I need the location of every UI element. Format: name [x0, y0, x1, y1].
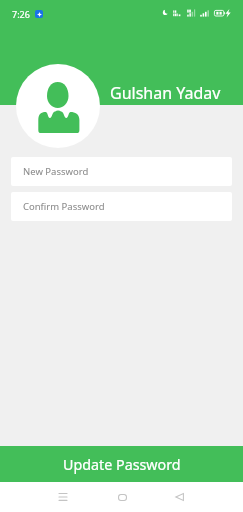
button[interactable]: Back: [164, 482, 194, 512]
button[interactable]: Recent apps: [48, 482, 78, 512]
staticText: 7:26: [12, 8, 30, 20]
staticText: New Password: [23, 165, 89, 178]
button[interactable]: Profile photo: [16, 64, 100, 148]
staticText: Update Password: [63, 455, 181, 474]
button[interactable]: Update Password: [0, 446, 243, 482]
button[interactable]: New Password: [11, 157, 232, 186]
staticText: Gulshan Yadav: [110, 82, 221, 104]
button[interactable]: Home: [107, 482, 137, 512]
button[interactable]: Confirm Password: [11, 192, 232, 221]
staticText: Confirm Password: [23, 200, 105, 213]
